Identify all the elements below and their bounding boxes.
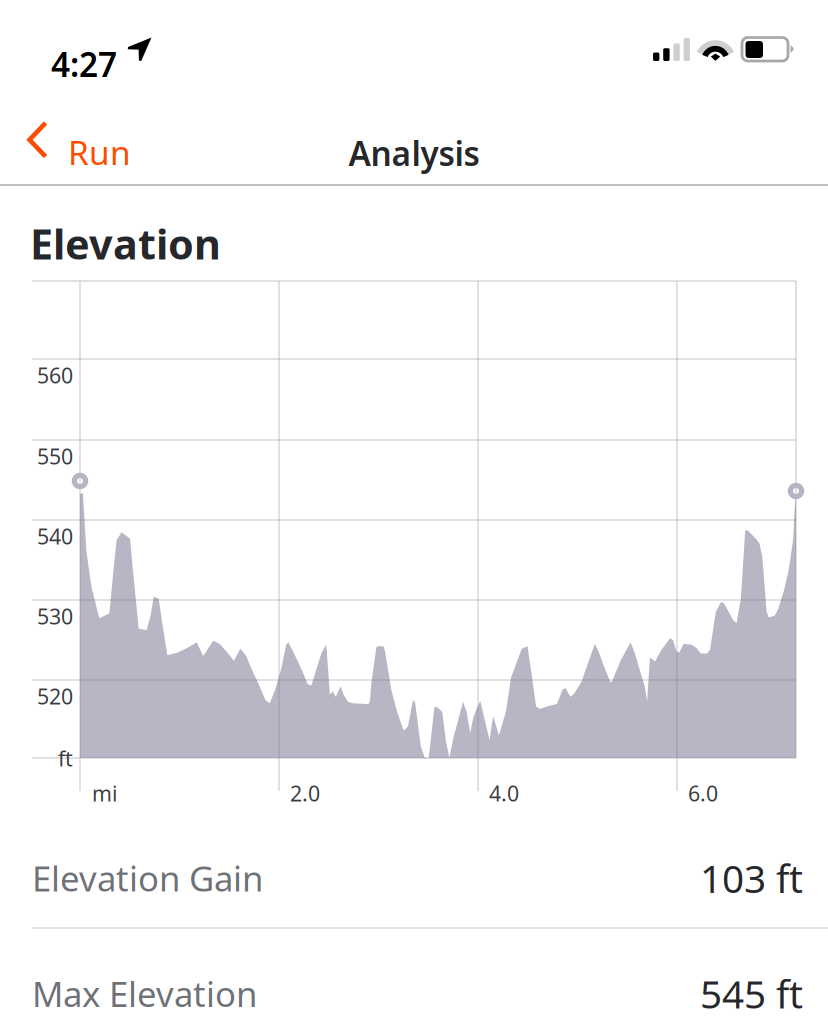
staticText: 530 — [37, 602, 73, 630]
staticText: 6.0 — [688, 779, 718, 807]
staticText: 520 — [37, 682, 73, 710]
staticText: 4.0 — [489, 779, 519, 807]
staticText: 103 ft — [700, 852, 803, 904]
staticText: Elevation Gain — [32, 855, 263, 901]
staticText: ft — [58, 744, 73, 772]
staticText: 4:27 — [51, 42, 117, 86]
staticText: 2.0 — [290, 779, 320, 807]
button[interactable]: Max Elevation — [0, 0, 828, 1029]
staticText: Run — [68, 130, 131, 174]
staticText: Elevation — [30, 216, 221, 271]
staticText: 550 — [37, 442, 73, 470]
staticText: Max Elevation — [32, 970, 257, 1016]
button[interactable]: Run — [0, 0, 828, 174]
staticText: 545 ft — [700, 968, 803, 1019]
staticText: 540 — [37, 522, 73, 550]
button[interactable]: Elevation Gain — [0, 0, 828, 942]
staticText: Analysis — [348, 131, 479, 175]
staticText: mi — [92, 779, 118, 807]
staticText: 560 — [37, 361, 73, 389]
